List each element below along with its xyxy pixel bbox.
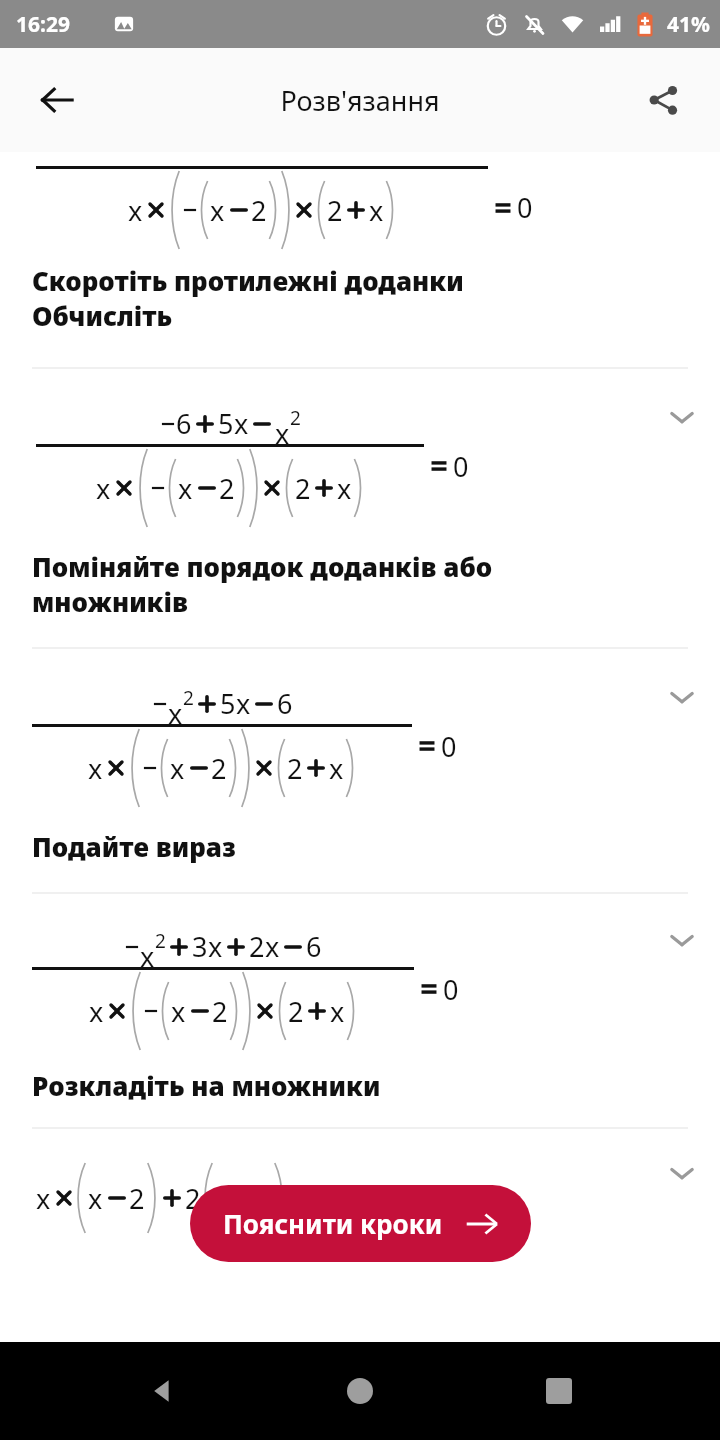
staticText: x	[88, 1180, 103, 1217]
staticText: x	[236, 685, 251, 722]
staticText: x	[265, 928, 280, 965]
staticText: 2	[219, 470, 235, 507]
staticText: 2	[251, 192, 267, 229]
staticText: x	[337, 470, 352, 507]
staticText: 0	[453, 448, 469, 485]
button[interactable]: Пояснити кроки	[190, 1185, 531, 1262]
staticText: 2	[256, 1180, 272, 1217]
staticText: 41%	[667, 10, 710, 39]
staticText: 2	[155, 928, 166, 954]
staticText: x	[210, 192, 225, 229]
button[interactable]: Home	[323, 1354, 397, 1428]
staticText: 0	[443, 971, 459, 1008]
button[interactable]: Expand step	[654, 669, 710, 725]
staticText: 2	[129, 1180, 145, 1217]
staticText: 5	[218, 405, 234, 442]
staticText: 6	[277, 685, 293, 722]
staticText: 2	[212, 993, 228, 1030]
staticText: x	[330, 993, 345, 1030]
staticText: x	[128, 192, 143, 229]
staticText: x	[234, 405, 249, 442]
staticText: x	[140, 938, 155, 975]
staticText: Пояснити кроки	[223, 1206, 443, 1241]
button[interactable]: Back	[125, 1354, 199, 1428]
button[interactable]: Expand step	[654, 389, 710, 445]
staticText: x	[329, 750, 344, 787]
staticText: 3	[192, 928, 208, 965]
staticText: Поміняйте порядок доданків або	[32, 549, 493, 584]
staticText: 2	[211, 750, 227, 787]
staticText: x	[96, 470, 111, 507]
staticText: Обчисліть	[32, 298, 173, 333]
staticText: 2	[327, 192, 343, 229]
button[interactable]: Recent apps	[522, 1354, 596, 1428]
staticText: множників	[32, 584, 189, 619]
button[interactable]: Back	[22, 65, 92, 135]
staticText: x	[168, 695, 183, 732]
staticText: x	[369, 192, 384, 229]
button[interactable]: Expand step	[654, 912, 710, 968]
staticText: x	[89, 993, 104, 1030]
staticText: 2	[183, 685, 194, 711]
staticText: 2	[295, 470, 311, 507]
staticText: Розв'язання	[280, 82, 440, 119]
button[interactable]: Share	[628, 65, 698, 135]
staticText: 2	[185, 1180, 201, 1217]
staticText: Розкладіть на множники	[32, 1068, 381, 1103]
staticText: 2	[290, 405, 301, 431]
staticText: x	[36, 1180, 51, 1217]
staticText: x	[208, 928, 223, 965]
staticText: 2	[287, 750, 303, 787]
staticText: x	[275, 415, 290, 452]
staticText: 0	[517, 189, 533, 226]
staticText: 5	[220, 685, 236, 722]
staticText: x	[171, 993, 186, 1030]
staticText: 6	[176, 405, 192, 442]
staticText: Подайте вираз	[32, 829, 236, 864]
staticText: 2	[249, 928, 265, 965]
staticText: 0	[441, 728, 457, 765]
button[interactable]: Expand step	[654, 1145, 710, 1201]
staticText: 2	[288, 993, 304, 1030]
staticText: 6	[306, 928, 322, 965]
staticText: Скоротіть протилежні доданки	[32, 263, 464, 298]
staticText: 16:29	[16, 10, 70, 39]
staticText: x	[178, 470, 193, 507]
staticText: x	[215, 1180, 230, 1217]
staticText: x	[170, 750, 185, 787]
staticText: x	[88, 750, 103, 787]
